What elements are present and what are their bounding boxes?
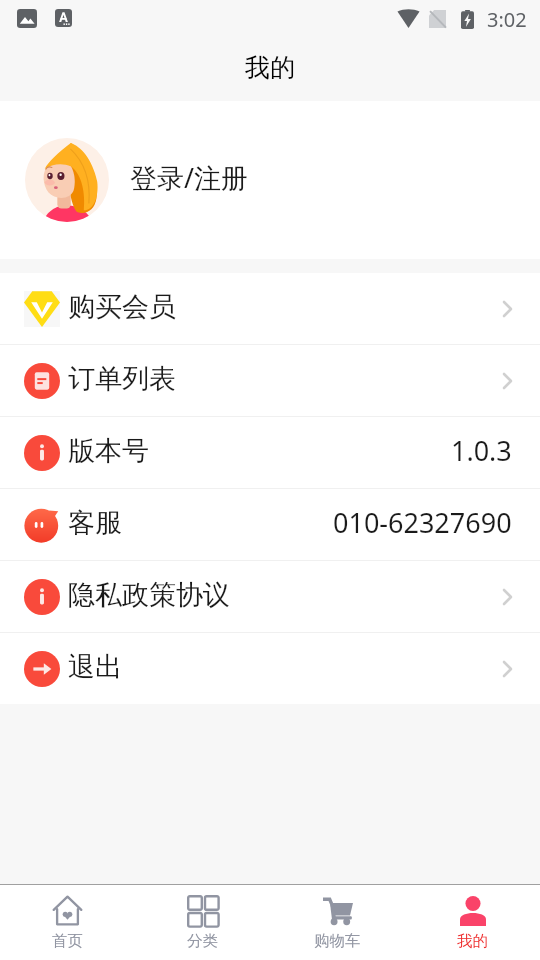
staticText: 客服 <box>68 506 122 540</box>
staticText: 3:02 <box>487 6 527 33</box>
button[interactable]: 订单列表 <box>0 345 540 416</box>
button[interactable]: 购物车 <box>270 885 405 960</box>
button[interactable]: 客服 <box>0 489 540 560</box>
staticText: 隐私政策协议 <box>68 578 230 612</box>
button[interactable]: Profile avatar <box>0 101 540 259</box>
staticText: 1.0.3 <box>451 432 512 469</box>
button[interactable]: 分类 <box>135 885 270 960</box>
staticText: 我的 <box>245 52 295 83</box>
staticText: 订单列表 <box>68 362 176 396</box>
button[interactable]: 版本号 <box>0 417 540 488</box>
other: Profile avatar <box>25 138 109 222</box>
staticText: 版本号 <box>68 434 149 468</box>
staticText: 购买会员 <box>68 290 176 324</box>
staticText: 010-62327690 <box>333 504 512 541</box>
staticText: 我的 <box>457 931 488 951</box>
staticText: 购物车 <box>314 931 361 951</box>
button[interactable]: 我的 <box>405 885 540 960</box>
button[interactable]: 首页 <box>0 885 135 960</box>
staticText: 登录/注册 <box>130 159 249 196</box>
staticText: 分类 <box>187 931 218 951</box>
staticText: 退出 <box>68 650 122 684</box>
button[interactable]: 购买会员 <box>0 273 540 344</box>
button[interactable]: 退出 <box>0 633 540 704</box>
staticText: 首页 <box>52 931 83 951</box>
button[interactable]: 隐私政策协议 <box>0 561 540 632</box>
